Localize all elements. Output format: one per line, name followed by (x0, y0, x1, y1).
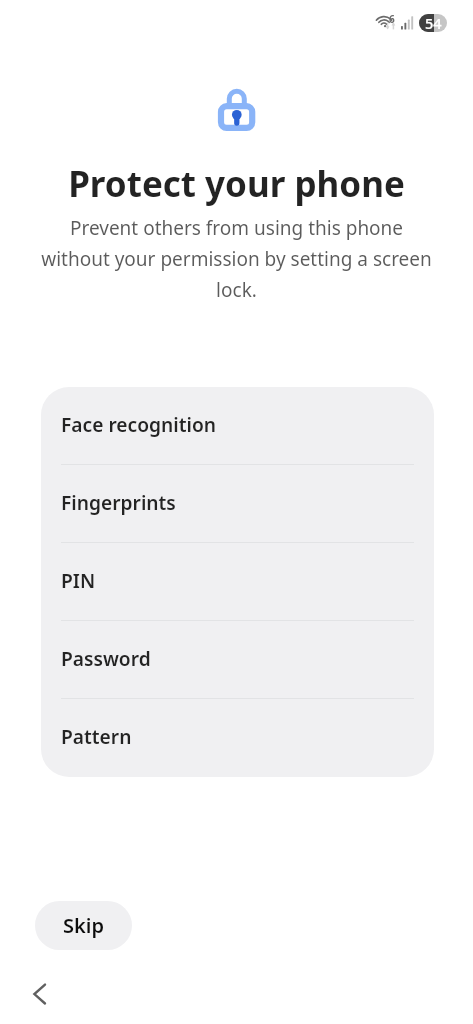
staticText: PIN (61, 567, 96, 593)
staticText: 6 (389, 12, 395, 26)
staticText: Prevent others from using this phone wit… (36, 215, 437, 303)
button[interactable]: Pattern (41, 699, 434, 777)
button[interactable]: Skip (35, 901, 132, 950)
staticText: Fingerprints (61, 489, 176, 515)
button[interactable]: Face recognition (41, 387, 434, 465)
staticText: Pattern (61, 723, 132, 749)
staticText: Skip (63, 912, 104, 939)
button[interactable]: Fingerprints (41, 465, 434, 543)
staticText: Protect your phone (68, 160, 405, 208)
staticText: 54 (425, 14, 442, 31)
button[interactable]: Password (41, 621, 434, 699)
staticText: Password (61, 645, 151, 671)
button[interactable]: Back (18, 976, 56, 1014)
button[interactable]: PIN (41, 543, 434, 621)
staticText: Face recognition (61, 411, 217, 437)
